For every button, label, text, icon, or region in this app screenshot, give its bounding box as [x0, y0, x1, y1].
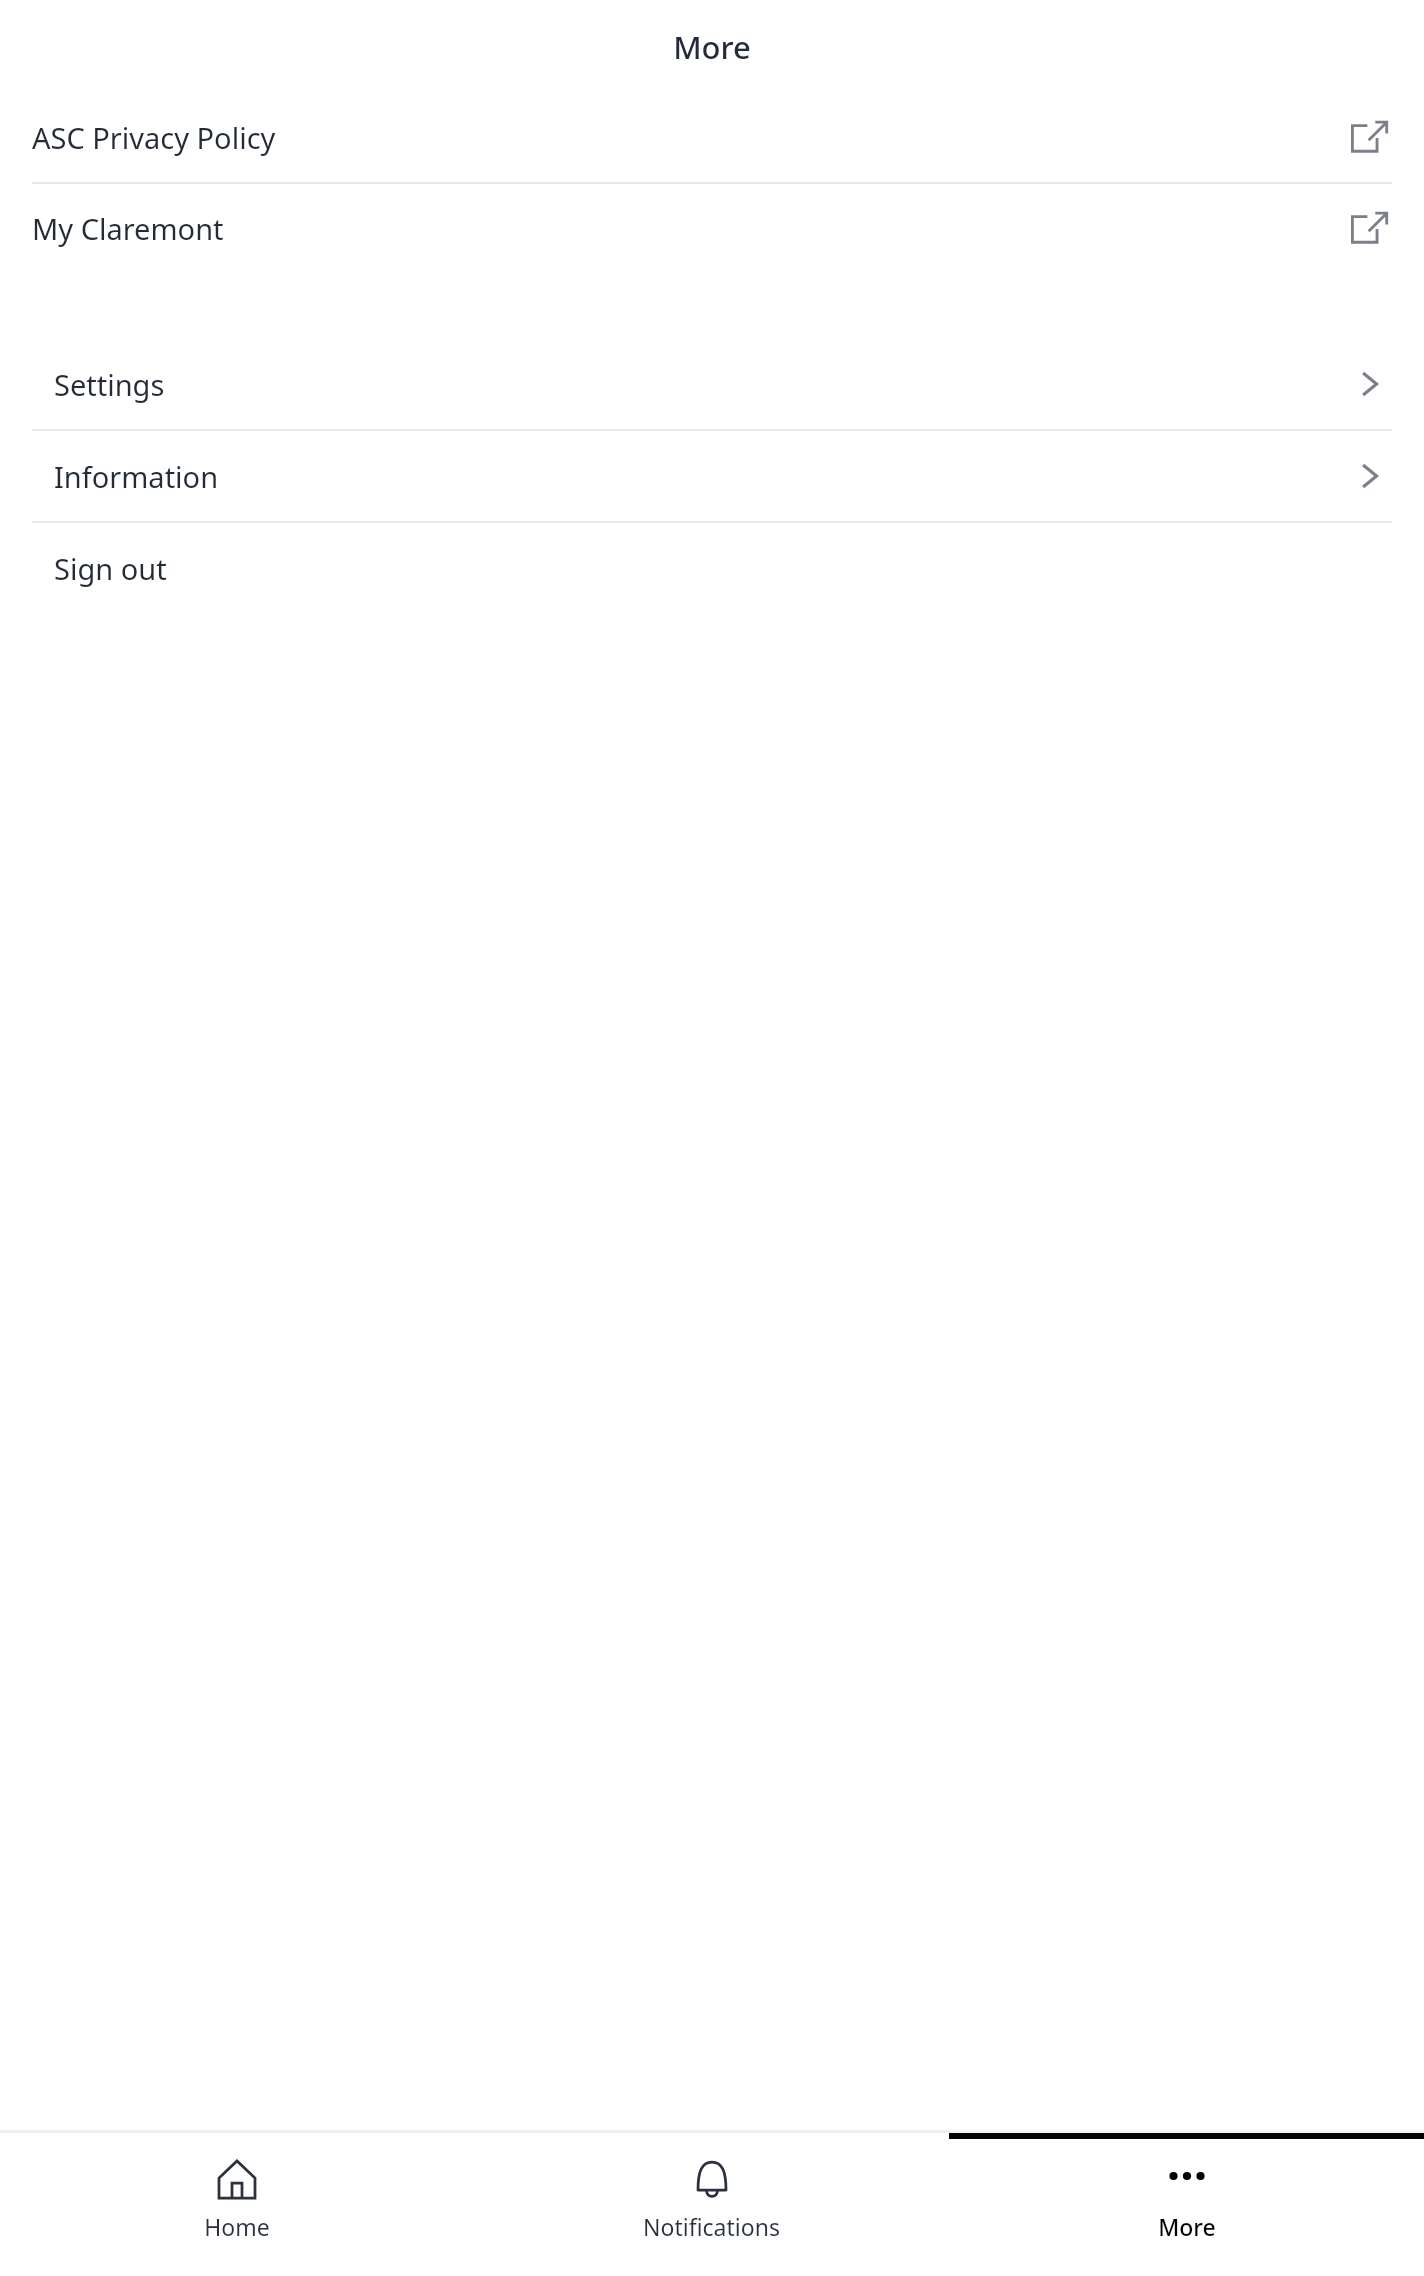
staticText: Home: [204, 2211, 270, 2242]
staticText: Information: [54, 457, 219, 496]
button[interactable]: Settings: [0, 339, 1424, 429]
other: Opens in a new window: [1348, 116, 1392, 160]
button[interactable]: Notifications: [474, 2139, 949, 2276]
button[interactable]: ASC Privacy Policy: [0, 93, 1424, 182]
staticText: Sign out: [54, 549, 167, 588]
staticText: More: [673, 26, 751, 68]
button[interactable]: Home: [0, 2139, 474, 2276]
staticText: Notifications: [643, 2211, 780, 2242]
button[interactable]: Sign out: [0, 523, 1424, 613]
button[interactable]: Information: [0, 431, 1424, 521]
button[interactable]: More: [949, 2139, 1424, 2276]
staticText: More: [1158, 2211, 1216, 2242]
other: Opens in a new window: [1348, 207, 1392, 251]
button[interactable]: My Claremont: [0, 184, 1424, 273]
other: Open: [1348, 363, 1390, 405]
staticText: Settings: [54, 365, 165, 404]
staticText: My Claremont: [32, 209, 224, 248]
staticText: ASC Privacy Policy: [32, 118, 276, 157]
other: Open: [1348, 455, 1390, 497]
